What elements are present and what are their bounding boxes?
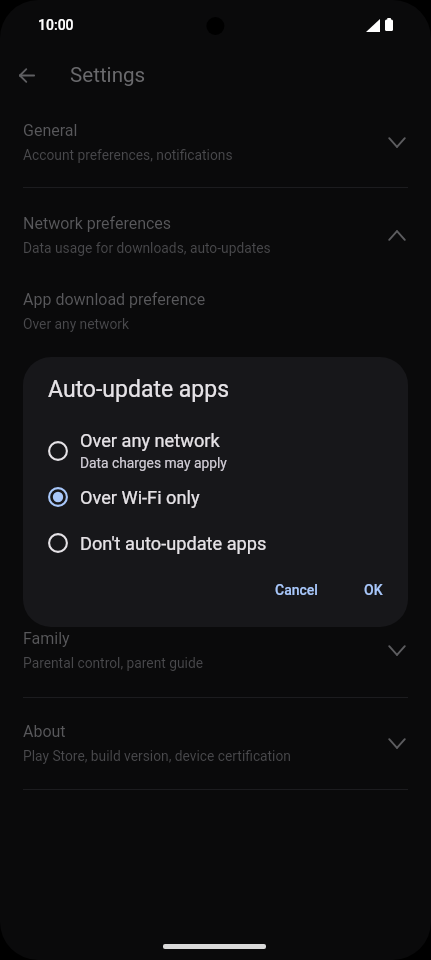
button[interactable] (23, 428, 408, 474)
staticText: Auto-update apps (48, 376, 230, 403)
button[interactable] (0, 693, 431, 773)
staticText: 10:00 (38, 17, 74, 33)
staticText: Play Store, build version, device certif… (23, 748, 291, 764)
staticText: Network preferences (23, 214, 172, 233)
staticText: App download preference (23, 290, 206, 309)
button[interactable]: Back (9, 57, 45, 93)
staticText: Data charges may apply (80, 455, 227, 471)
button[interactable] (0, 274, 431, 340)
button[interactable] (23, 520, 408, 566)
staticText: Data usage for downloads, auto-updates (23, 240, 271, 256)
staticText: Account preferences, notifications (23, 147, 233, 163)
staticText: Settings (70, 63, 146, 87)
button[interactable] (23, 474, 408, 520)
staticText: Cancel (275, 582, 318, 598)
button[interactable] (0, 92, 431, 172)
staticText: Over Wi-Fi only (80, 487, 200, 508)
button[interactable] (0, 186, 431, 266)
button[interactable]: OK (352, 574, 395, 606)
staticText: General (23, 121, 78, 140)
staticText: Over any network (23, 316, 129, 332)
button[interactable]: Cancel (263, 574, 330, 606)
staticText: Over any network (80, 430, 220, 451)
staticText: Parental control, parent guide (23, 655, 204, 671)
staticText: Don't auto-update apps (80, 533, 267, 554)
staticText: About (23, 722, 66, 741)
button[interactable] (0, 600, 431, 680)
staticText: OK (364, 582, 383, 598)
staticText: Family (23, 629, 70, 648)
